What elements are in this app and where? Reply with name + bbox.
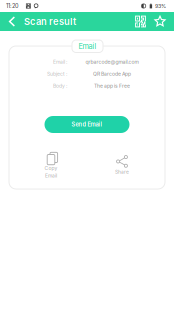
staticText: Body : <box>53 83 67 89</box>
staticText: Share <box>115 169 129 175</box>
button[interactable]: Add to favourites <box>153 12 167 31</box>
staticText: The app is Free <box>94 83 130 89</box>
staticText: Subject : <box>47 71 67 77</box>
button[interactable]: Copy <box>9 150 93 180</box>
staticText: Email : <box>53 59 67 65</box>
button[interactable]: Share <box>93 150 151 180</box>
staticText: 11:20 <box>6 3 19 9</box>
button[interactable]: Send Email <box>44 116 129 133</box>
staticText: qrbarcode@gmail.com <box>85 59 138 65</box>
button[interactable]: Back <box>5 12 19 31</box>
staticText: 93% <box>155 3 166 9</box>
staticText: Scan result <box>24 16 76 27</box>
staticText: Email <box>45 173 57 179</box>
staticText: QR Barcode App <box>93 71 131 77</box>
staticText: Email <box>78 42 96 51</box>
button[interactable]: Show QR code <box>132 12 149 31</box>
staticText: Copy <box>44 165 57 171</box>
staticText: Send Email <box>71 121 102 128</box>
